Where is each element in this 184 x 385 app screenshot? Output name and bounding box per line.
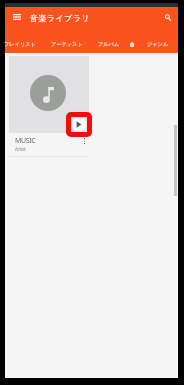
button[interactable]: Search (159, 8, 177, 26)
staticText: MUSIC (15, 136, 36, 146)
button[interactable]: Play (71, 117, 87, 132)
button[interactable]: プレイリスト (0, 38, 41, 51)
staticText: プレイリスト (4, 41, 36, 48)
button[interactable]: Navigation menu (8, 8, 26, 26)
button[interactable]: アルバム (93, 38, 125, 51)
button[interactable]: アーティスト (46, 38, 88, 51)
button[interactable]: Work profile (126, 38, 138, 50)
button[interactable]: MUSIC (9, 56, 89, 155)
staticText: ジャンル (147, 41, 169, 48)
staticText: アーティスト (51, 41, 83, 48)
button[interactable]: More options (78, 135, 90, 147)
button[interactable]: ジャンル (142, 38, 174, 51)
staticText: 音楽ライブラリ (30, 13, 90, 23)
staticText: アルバム (98, 41, 120, 48)
staticText: Artist (15, 146, 26, 152)
